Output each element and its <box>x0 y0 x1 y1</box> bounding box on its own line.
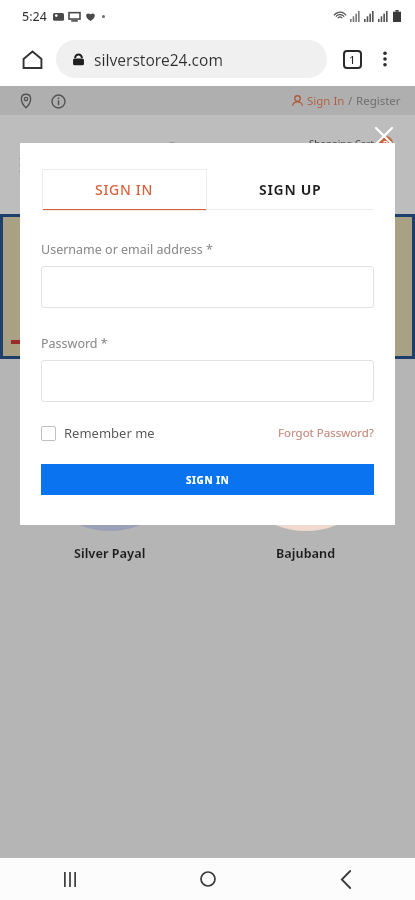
button[interactable]: SIGN IN <box>42 169 207 211</box>
button[interactable]: Close <box>369 121 399 151</box>
staticText: 1 <box>349 52 356 67</box>
staticText: Shopping Cart <box>309 137 374 150</box>
staticText: Bajuband <box>276 545 336 562</box>
button[interactable]: Sign In <box>291 93 401 109</box>
button[interactable]: Back <box>277 858 415 900</box>
button[interactable]: Menu <box>14 145 54 185</box>
staticText: 5:24 <box>22 8 47 25</box>
button[interactable]: silverstore24.com <box>56 40 327 78</box>
staticText: Sign In <box>307 93 345 109</box>
staticText: SIGN UP <box>259 180 322 199</box>
staticText: Remember me <box>64 424 155 442</box>
staticText: silverstore24.com <box>94 49 223 70</box>
button[interactable]: More options <box>369 43 401 75</box>
button[interactable]: Recent apps <box>0 858 139 900</box>
button[interactable]: Forgot Password? <box>278 425 374 441</box>
button[interactable]: Silver Payal <box>22 371 197 562</box>
staticText: Silver Payal <box>74 545 146 562</box>
staticText: Password * <box>41 335 108 352</box>
button[interactable]: Bajuband <box>218 371 393 562</box>
staticText: SIGN IN <box>95 180 154 199</box>
button[interactable]: SIGN IN <box>41 464 374 495</box>
staticText: Register <box>356 93 401 109</box>
staticText: 2 <box>383 138 389 150</box>
button[interactable]: Tabs <box>335 42 369 76</box>
button[interactable]: Home <box>14 41 50 77</box>
button[interactable] <box>41 360 374 402</box>
button[interactable]: SIGN UP <box>207 169 373 210</box>
staticText: / <box>345 93 356 109</box>
button[interactable]: Location <box>16 91 36 111</box>
staticText: Forgot Password? <box>278 425 374 441</box>
button[interactable]: Site information <box>48 91 68 111</box>
staticText: RV <box>164 240 179 256</box>
staticText: Username or email address * <box>41 241 213 258</box>
button[interactable]: Remember me <box>41 424 155 442</box>
button[interactable] <box>41 266 374 308</box>
button[interactable]: Shopping Cart <box>309 136 393 193</box>
staticText: SIGN IN <box>186 473 230 487</box>
button[interactable]: Home <box>139 858 277 900</box>
